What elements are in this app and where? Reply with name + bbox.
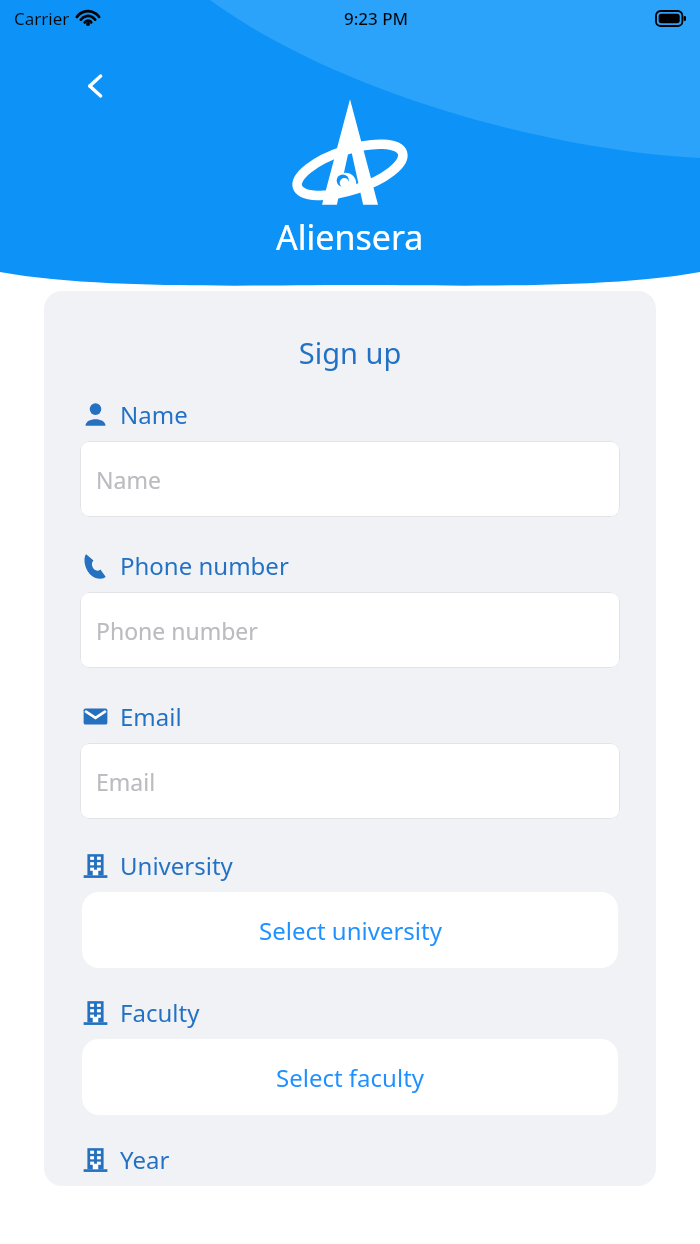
staticText: Phone number xyxy=(120,549,289,582)
staticText: Carrier xyxy=(14,7,70,30)
staticText: Name xyxy=(120,398,188,431)
staticText: Sign up xyxy=(44,333,656,372)
button[interactable]: Select university xyxy=(82,892,618,968)
staticText: Faculty xyxy=(120,996,200,1029)
staticText: Aliensera xyxy=(276,214,424,260)
button[interactable]: Phone number xyxy=(80,592,620,668)
button[interactable]: Email xyxy=(80,743,620,819)
button[interactable]: Back xyxy=(72,62,120,110)
button[interactable]: Name xyxy=(80,441,620,517)
staticText: Name xyxy=(96,464,161,495)
button[interactable]: Select faculty xyxy=(82,1039,618,1115)
staticText: Select university xyxy=(259,914,442,947)
staticText: Year xyxy=(120,1143,170,1176)
staticText: University xyxy=(120,849,233,882)
staticText: Email xyxy=(120,700,182,733)
staticText: Phone number xyxy=(96,615,258,646)
staticText: Select faculty xyxy=(276,1061,425,1094)
staticText: Email xyxy=(96,766,156,797)
staticText: 9:23 PM xyxy=(344,7,409,30)
